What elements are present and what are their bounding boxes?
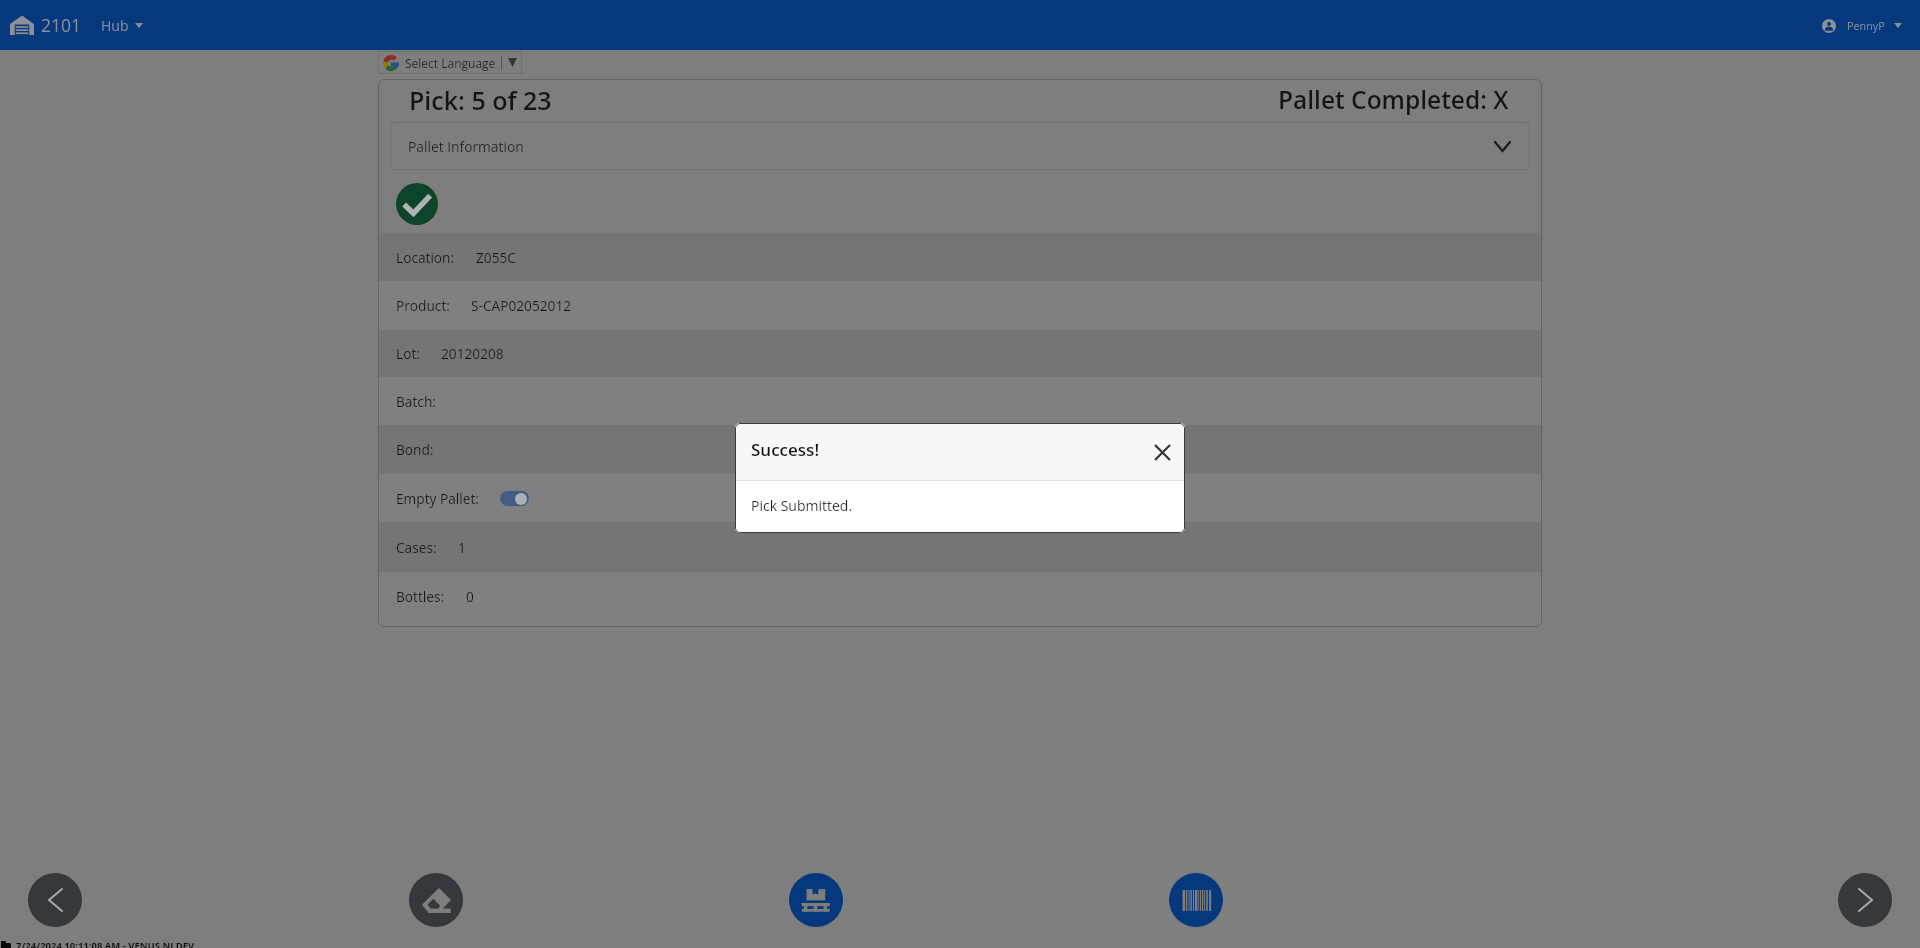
button[interactable]: Hub (95, 0, 149, 50)
button[interactable]: Bottles: (378, 572, 1542, 620)
staticText: Location: (396, 248, 455, 267)
button[interactable]: Pick completed (396, 183, 438, 225)
staticText: 0 (466, 587, 474, 606)
button[interactable]: Scan barcode (1169, 873, 1223, 927)
button[interactable]: Location: (378, 233, 1542, 281)
button[interactable]: Close (1147, 437, 1177, 467)
button[interactable]: Empty pallet toggle (500, 491, 529, 506)
staticText: Success! (751, 438, 820, 461)
button[interactable]: Next (1838, 873, 1892, 927)
staticText: 2101 (41, 13, 82, 37)
button[interactable]: Bond: (378, 425, 1542, 474)
button[interactable]: Select Language (378, 51, 522, 74)
button[interactable]: Pallet Completed: X (1270, 79, 1517, 120)
staticText: Pallet Information (408, 137, 524, 156)
button[interactable]: Cases: (378, 522, 1542, 572)
button[interactable]: Batch: (378, 377, 1542, 425)
staticText: Bottles: (396, 587, 445, 606)
staticText: Batch: (396, 392, 436, 411)
staticText: PennyP (1847, 18, 1885, 33)
button[interactable]: Lot: (378, 330, 1542, 377)
staticText: Hub (101, 16, 129, 35)
button[interactable]: Clear (409, 873, 463, 927)
staticText: Z055C (476, 248, 516, 267)
button[interactable]: Empty Pallet: (378, 474, 1542, 522)
staticText: Empty Pallet: (396, 489, 479, 508)
staticText: Pick Submitted. (751, 496, 853, 515)
staticText: Bond: (396, 440, 434, 459)
staticText: Lot: (396, 344, 420, 363)
staticText: 20120208 (441, 344, 504, 363)
button[interactable]: Product: (378, 281, 1542, 330)
staticText: Product: (396, 296, 450, 315)
button[interactable]: PennyP (1816, 10, 1908, 41)
staticText: Pallet Completed: X (1278, 83, 1509, 116)
button[interactable]: Pallet (789, 873, 843, 927)
button[interactable]: Previous (28, 873, 82, 927)
staticText: Pick: 5 of 23 (409, 83, 552, 117)
staticText: 7/24/2024 10:11:08 AM - VENUS NJ DEV (16, 939, 195, 948)
staticText: S-CAP02052012 (471, 296, 572, 315)
staticText: 1 (458, 538, 466, 557)
staticText: Cases: (396, 538, 437, 557)
button[interactable]: Pallet Information (390, 122, 1530, 170)
button[interactable]: 2101 (6, 0, 86, 50)
staticText: Select Language (405, 55, 496, 71)
